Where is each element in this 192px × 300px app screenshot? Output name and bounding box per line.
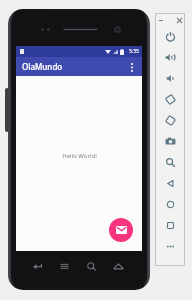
button[interactable]: Overview (156, 215, 184, 236)
button[interactable]: Rotate right (156, 110, 184, 131)
button[interactable]: Home (156, 194, 184, 215)
button[interactable]: Minimize (156, 15, 166, 25)
button[interactable]: Volume up (156, 47, 184, 68)
button[interactable]: More (156, 236, 184, 257)
button[interactable]: Back (156, 173, 184, 194)
other: Back (32, 261, 43, 272)
staticText: 5:35 (129, 48, 139, 55)
other: Search (86, 261, 97, 272)
staticText: OlaMundo (22, 61, 63, 72)
button[interactable]: Compose email (109, 218, 133, 242)
button[interactable]: Zoom (156, 152, 184, 173)
staticText: Hello World! (62, 152, 97, 160)
button[interactable]: Close (174, 15, 184, 25)
button[interactable]: Volume down (156, 68, 184, 89)
button[interactable]: Rotate left (156, 89, 184, 110)
button[interactable]: Screenshot (156, 131, 184, 152)
button[interactable]: More options (124, 59, 140, 75)
other: Menu (59, 261, 70, 272)
other: Home (113, 261, 124, 272)
button[interactable]: Power (156, 26, 184, 47)
